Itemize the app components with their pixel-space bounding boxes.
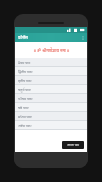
- button[interactable]: षष्ठ पाठः: [15, 103, 87, 111]
- button[interactable]: अष्टम पाठः: [15, 121, 87, 129]
- staticText: सप्तम पाठः: [18, 114, 33, 119]
- button[interactable]: चतुर्थ पाठः: [15, 85, 87, 93]
- staticText: कोर्सेस: [18, 35, 28, 40]
- staticText: पञ्चम पाठः: [18, 96, 33, 101]
- staticText: द्वितीय पाठः: [18, 69, 33, 74]
- staticText: चतुर्थ पाठः: [18, 87, 31, 92]
- staticText: षष्ठ पाठः: [18, 105, 29, 110]
- staticText: तृतीय पाठः: [18, 78, 32, 83]
- staticText: अष्टम पाठः: [18, 123, 32, 128]
- button[interactable]: सप्तम पाठः: [15, 112, 87, 120]
- button[interactable]: तृतीय पाठः: [15, 76, 87, 84]
- button[interactable]: पञ्चम पाठः: [15, 94, 87, 102]
- button[interactable]: द्वितीय पाठः: [15, 67, 87, 75]
- staticText: प्रथम पाठ: [18, 60, 31, 65]
- button[interactable]: More options: [79, 33, 87, 42]
- staticText: ॥ ॐ श्रीगणेशाय नमः ॥: [33, 48, 70, 53]
- staticText: अगला पाठ: [67, 143, 80, 147]
- button[interactable]: प्रथम पाठ: [15, 58, 87, 66]
- button[interactable]: अगला पाठ: [62, 141, 84, 149]
